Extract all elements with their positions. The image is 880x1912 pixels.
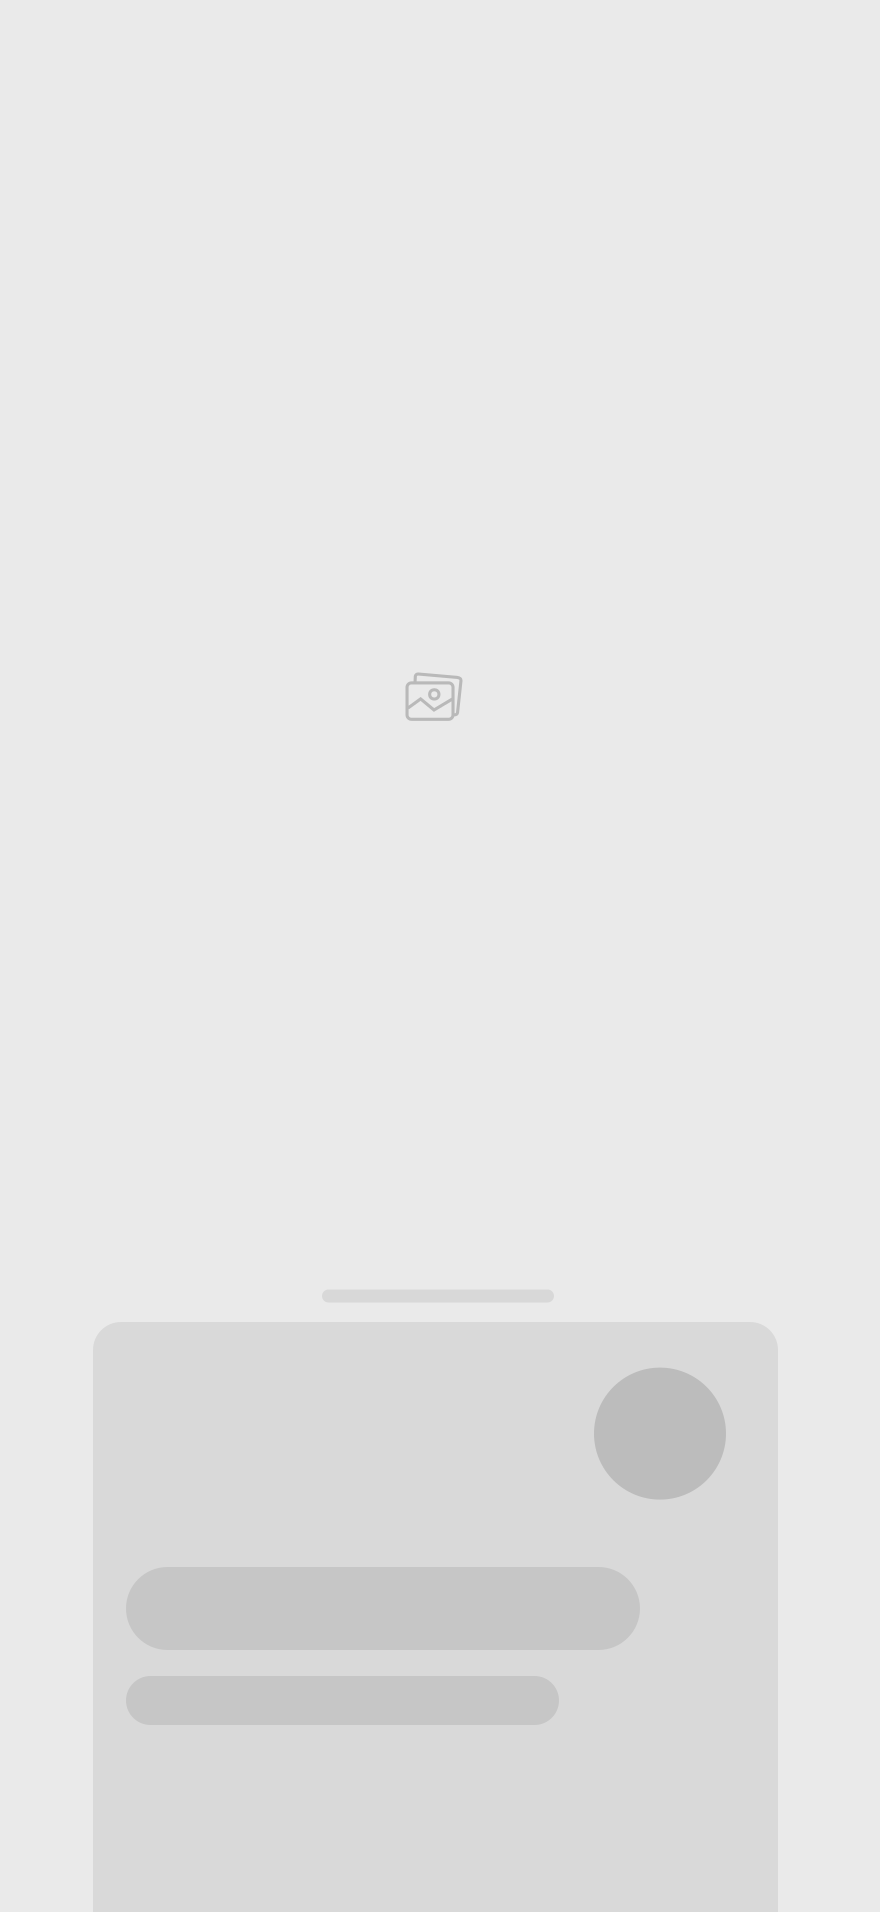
button[interactable]: Photo (0, 0, 880, 1912)
